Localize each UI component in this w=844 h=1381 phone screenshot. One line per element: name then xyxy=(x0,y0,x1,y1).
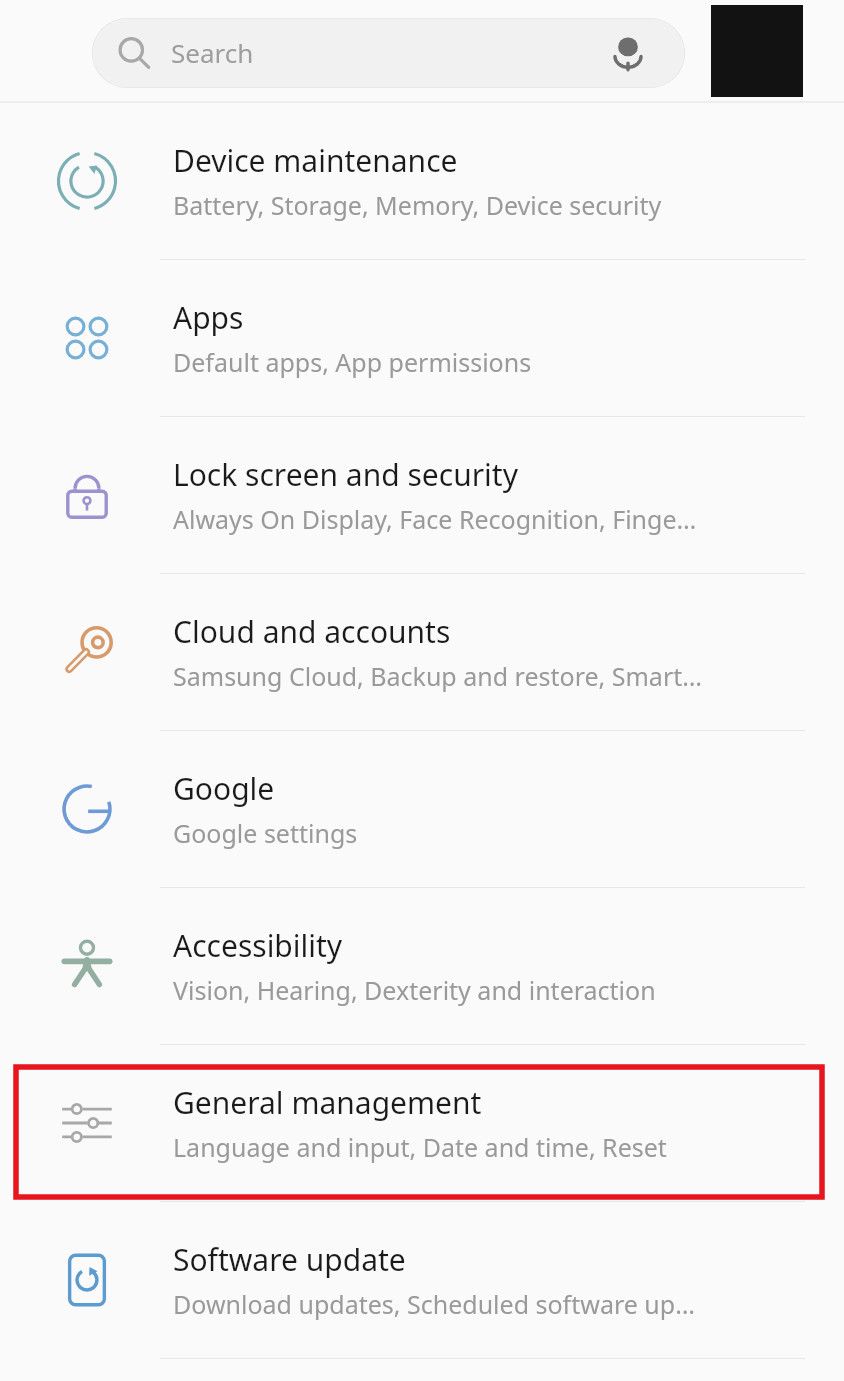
staticText: Software update xyxy=(173,1239,406,1280)
staticText: Apps xyxy=(173,297,244,338)
staticText: General management xyxy=(173,1082,482,1123)
button[interactable]: General management xyxy=(0,1045,844,1201)
other: Search xyxy=(117,36,151,70)
staticText: Cloud and accounts xyxy=(173,611,451,652)
staticText: Language and input, Date and time, Reset xyxy=(173,1130,667,1164)
button[interactable]: Search xyxy=(92,18,685,88)
staticText: Search xyxy=(171,35,254,70)
button[interactable]: Lock screen and security xyxy=(0,417,844,573)
staticText: Samsung Cloud, Backup and restore, Smart… xyxy=(173,659,703,693)
other: Voice search xyxy=(607,32,649,74)
staticText: Device maintenance xyxy=(173,140,458,181)
button[interactable]: Cloud and accounts xyxy=(0,574,844,730)
button[interactable]: Accessibility xyxy=(0,888,844,1044)
staticText: Vision, Hearing, Dexterity and interacti… xyxy=(173,973,656,1007)
button[interactable]: Apps xyxy=(0,260,844,416)
button[interactable]: Device maintenance xyxy=(0,103,844,259)
staticText: Google xyxy=(173,768,275,809)
button[interactable]: Software update xyxy=(0,1202,844,1358)
staticText: Always On Display, Face Recognition, Fin… xyxy=(173,502,697,536)
staticText: Lock screen and security xyxy=(173,454,518,495)
staticText: Battery, Storage, Memory, Device securit… xyxy=(173,188,662,222)
staticText: Accessibility xyxy=(173,925,343,966)
staticText: Default apps, App permissions xyxy=(173,345,532,379)
staticText: Download updates, Scheduled software up… xyxy=(173,1287,695,1321)
button[interactable]: Google xyxy=(0,731,844,887)
staticText: Google settings xyxy=(173,816,358,850)
